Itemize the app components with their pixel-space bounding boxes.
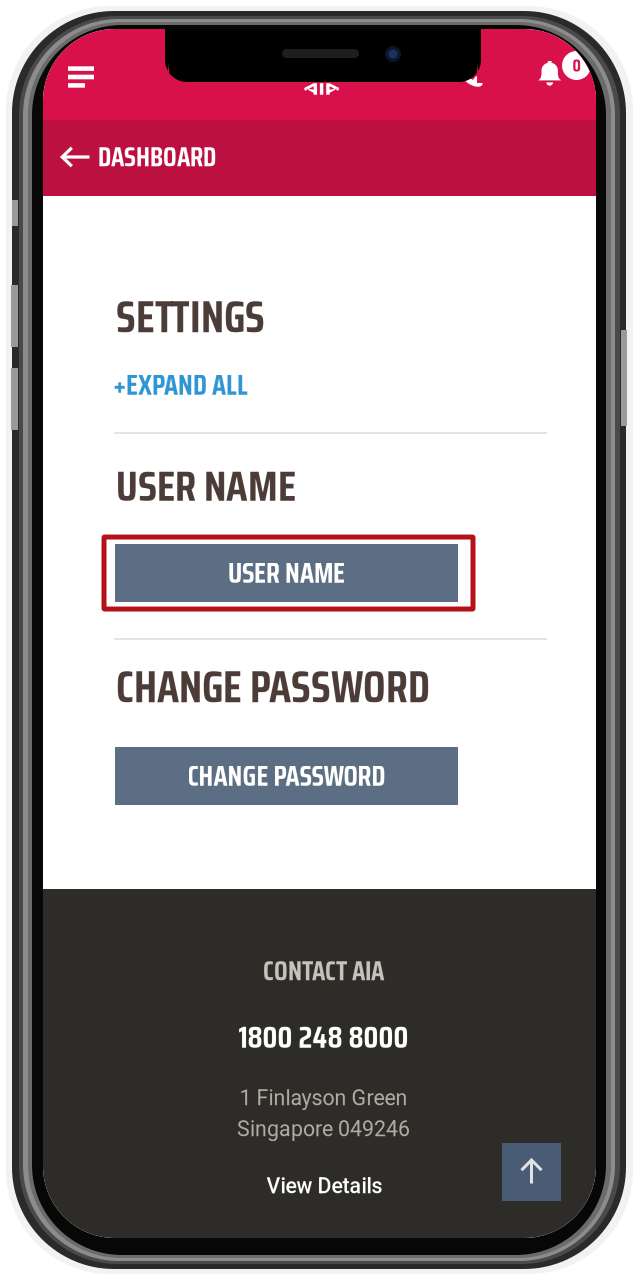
button[interactable]: CHANGE PASSWORD <box>115 747 458 805</box>
button[interactable]: USER NAME <box>115 544 458 602</box>
button[interactable]: Back to Dashboard <box>43 120 596 196</box>
button[interactable]: Menu <box>53 53 109 101</box>
staticText: DASHBOARD <box>98 136 216 178</box>
button[interactable]: 1800 248 8000 <box>47 1019 600 1055</box>
button[interactable]: Notifications, 0 unread <box>526 47 598 97</box>
button[interactable]: Call AIA <box>450 53 492 97</box>
button[interactable]: Back to top <box>502 1143 561 1201</box>
staticText: CHANGE PASSWORD <box>116 652 430 722</box>
button[interactable]: +EXPAND ALL <box>113 369 393 401</box>
staticText: 1800 248 8000 <box>238 1013 408 1061</box>
staticText: CONTACT AIA <box>263 950 384 992</box>
staticText: SETTINGS <box>116 282 265 352</box>
button[interactable]: View Details <box>48 1173 601 1199</box>
staticText: 0 <box>572 52 580 79</box>
staticText: +EXPAND ALL <box>113 363 248 407</box>
staticText: 1 Finlayson Green <box>239 1085 407 1110</box>
staticText: Singapore 049246 <box>237 1116 410 1141</box>
staticText: USER NAME <box>116 452 296 520</box>
staticText: USER NAME <box>228 551 345 595</box>
staticText: CHANGE PASSWORD <box>187 754 385 798</box>
staticText: View Details <box>266 1173 382 1198</box>
